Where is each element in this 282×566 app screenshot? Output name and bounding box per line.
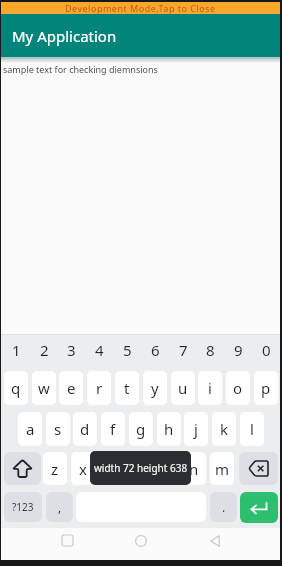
staticText: e (67, 378, 76, 398)
staticText: y (151, 378, 159, 398)
button[interactable]: y (143, 371, 167, 405)
button[interactable]: m (210, 452, 234, 485)
button[interactable]: g (129, 412, 153, 446)
button[interactable]: 3 (59, 340, 83, 358)
button[interactable]: 8 (198, 340, 222, 358)
button[interactable]: 4 (87, 340, 111, 358)
staticText: v (135, 459, 143, 479)
staticText: 5 (123, 340, 132, 358)
button[interactable]: x (71, 452, 95, 485)
staticText: b (162, 459, 172, 479)
staticText: f (110, 419, 116, 439)
staticText: p (261, 378, 271, 398)
button[interactable]: e (59, 371, 83, 405)
button[interactable]: z (43, 452, 67, 485)
button[interactable]: k (212, 412, 236, 446)
button[interactable]: 5 (115, 340, 139, 358)
staticText: sample text for checking diemnsions (3, 63, 158, 75)
staticText: s (54, 419, 62, 439)
staticText: m (215, 459, 230, 479)
button[interactable]: a (18, 412, 42, 446)
staticText: 6 (151, 340, 160, 358)
staticText: . (222, 499, 226, 515)
button[interactable]: l (240, 412, 264, 446)
staticText: w (38, 378, 50, 398)
staticText: h (164, 419, 174, 439)
staticText: , (58, 499, 62, 515)
staticText: j (194, 419, 198, 439)
staticText: a (26, 419, 35, 439)
button[interactable]: 1 (4, 340, 28, 358)
button[interactable]: . (210, 492, 237, 522)
staticText: My Application (12, 26, 117, 46)
staticText: 7 (179, 340, 188, 358)
button[interactable] (239, 452, 278, 485)
staticText: o (233, 378, 243, 398)
button[interactable]: Development Mode,Tap to Close (1, 2, 280, 14)
staticText: Development Mode,Tap to Close (65, 2, 216, 14)
staticText: 1 (12, 340, 21, 358)
button[interactable]: f (101, 412, 125, 446)
staticText: r (96, 378, 103, 398)
staticText: 9 (234, 340, 243, 358)
button[interactable]: i (198, 371, 222, 405)
button[interactable]: 6 (143, 340, 167, 358)
staticText: d (80, 419, 90, 439)
button[interactable]: ?123 (4, 492, 42, 522)
button[interactable]: h (157, 412, 181, 446)
button[interactable]: 0 (254, 340, 278, 358)
staticText: u (178, 378, 188, 398)
button[interactable] (4, 452, 41, 485)
button[interactable]: n (182, 452, 206, 485)
staticText: 8 (206, 340, 215, 358)
button[interactable]: , (46, 492, 73, 522)
staticText: q (11, 378, 21, 398)
button[interactable]: 9 (226, 340, 250, 358)
button[interactable]: t (115, 371, 139, 405)
button[interactable] (201, 528, 229, 553)
staticText: 3 (67, 340, 76, 358)
staticText: ?123 (12, 500, 34, 514)
button[interactable]: s (46, 412, 70, 446)
button[interactable]: d (73, 412, 97, 446)
button[interactable]: 2 (32, 340, 56, 358)
button[interactable] (53, 528, 81, 553)
staticText: c (107, 459, 115, 479)
staticText: 0 (262, 340, 271, 358)
staticText: t (124, 378, 130, 398)
button[interactable]: b (155, 452, 179, 485)
button[interactable]: j (184, 412, 208, 446)
button[interactable]: c (99, 452, 123, 485)
staticText: z (51, 459, 59, 479)
staticText: 2 (40, 340, 49, 358)
button[interactable]: w (32, 371, 56, 405)
button[interactable]: o (226, 371, 250, 405)
button[interactable] (127, 528, 155, 553)
staticText: k (220, 419, 229, 439)
button[interactable] (240, 492, 278, 523)
staticText: l (250, 419, 254, 439)
button[interactable]: u (171, 371, 195, 405)
staticText: i (208, 378, 212, 398)
staticText: width 72 height 638 (94, 461, 188, 475)
button[interactable]: q (4, 371, 28, 405)
staticText: g (136, 419, 146, 439)
button[interactable]: v (127, 452, 151, 485)
button[interactable]: p (254, 371, 278, 405)
staticText: 4 (95, 340, 104, 358)
staticText: n (189, 459, 199, 479)
button[interactable]: r (87, 371, 111, 405)
button[interactable]: 7 (171, 340, 195, 358)
staticText: x (79, 459, 87, 479)
